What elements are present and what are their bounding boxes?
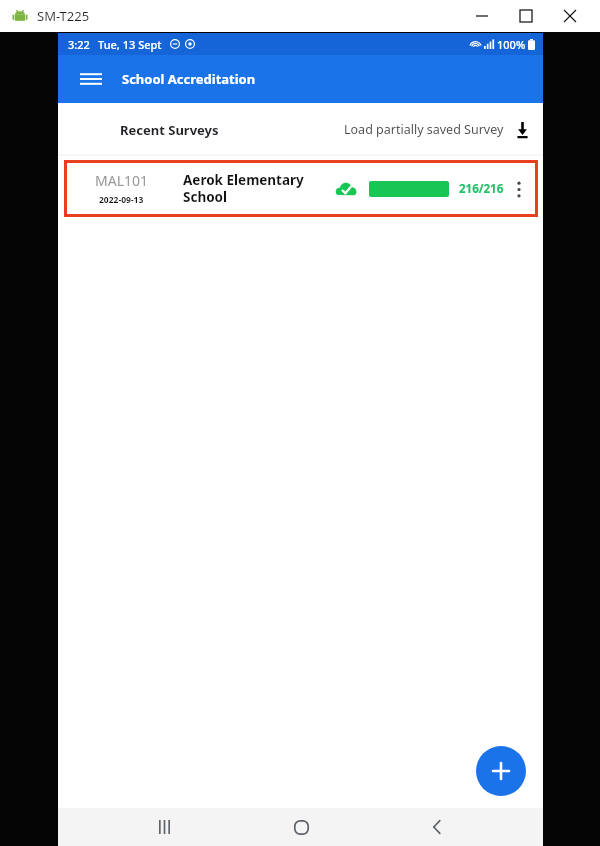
button[interactable]: Load partially saved Survey — [344, 121, 531, 138]
button[interactable]: Recent apps — [134, 808, 194, 846]
button[interactable]: More options — [510, 174, 528, 204]
button[interactable]: Uploaded — [333, 176, 359, 202]
staticText: SM-T225 — [37, 7, 90, 25]
button[interactable]: Home — [271, 808, 331, 846]
button[interactable]: Open navigation menu — [74, 62, 108, 96]
button[interactable]: Add new survey — [476, 746, 526, 796]
staticText: Load partially saved Survey — [344, 121, 504, 138]
staticText: MAL101 — [95, 171, 149, 190]
button[interactable]: Minimize — [460, 0, 504, 32]
staticText: School Accreditation — [122, 70, 256, 88]
staticText: 216/216 — [459, 181, 504, 197]
staticText: Tue, 13 Sept — [98, 37, 162, 52]
staticText: 100% — [497, 37, 526, 52]
staticText: Aerok Elementary School — [183, 171, 308, 206]
staticText: 2022-09-13 — [99, 194, 144, 206]
button[interactable]: Maximize — [504, 0, 548, 32]
staticText: 3:22 — [68, 37, 90, 52]
button[interactable]: MAL101 — [64, 160, 538, 217]
button[interactable]: Back — [407, 808, 467, 846]
button[interactable]: Close — [548, 0, 592, 32]
button[interactable]: Recent Surveys — [120, 121, 219, 139]
